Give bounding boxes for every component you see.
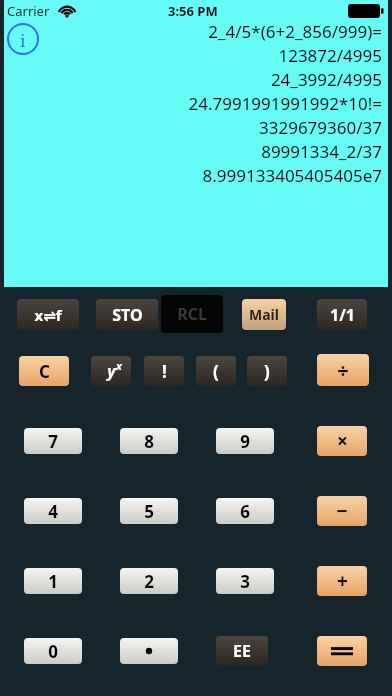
staticText: × [337,428,348,454]
staticText: 9 [240,430,250,453]
staticText: 1/1 [330,304,355,326]
staticText: Mail [249,305,279,324]
staticText: 3:56 PM [168,2,218,20]
button[interactable]: 3 [216,568,274,594]
button[interactable]: 8 [120,428,178,454]
button[interactable]: 2 [120,568,178,594]
button[interactable]: Mail [242,299,286,330]
button[interactable]: 1 [24,568,82,594]
staticText: 3 [240,570,250,593]
staticText: 7 [48,430,58,453]
button[interactable]: 9 [216,428,274,454]
button[interactable]: Info [6,22,40,56]
staticText: C [39,360,50,383]
button[interactable]: ) [247,356,287,386]
staticText: 2 [144,570,154,593]
staticText: 24_3992/4995 [8,68,382,92]
button[interactable]: 6 [216,498,274,524]
button[interactable]: Decimal point [120,638,178,664]
button[interactable]: Equals [317,636,367,666]
button[interactable]: STO [96,299,158,330]
staticText: 89991334_2/37 [8,140,382,164]
staticText: 123872/4995 [8,44,382,68]
button[interactable]: 0 [24,638,82,664]
staticText: 2_4/5*(6+2_856/999)= [8,20,382,44]
staticText: y [107,360,116,382]
staticText: 8 [144,430,154,453]
staticText: Carrier [7,2,50,20]
button[interactable]: ! [144,356,184,386]
staticText: x⇌f [34,305,62,325]
button[interactable]: x⇌f [17,299,79,330]
button[interactable]: EE [216,636,268,665]
button[interactable]: + [317,566,367,596]
staticText: 8.999133405405405e7 [8,164,382,188]
staticText: + [337,568,348,594]
button[interactable]: 5 [120,498,178,524]
staticText: STO [112,304,143,326]
staticText: 4 [48,500,58,523]
staticText: 24.7991991991992*10!= [8,92,382,116]
button[interactable]: − [317,496,367,526]
staticText: ! [162,360,167,383]
staticText: 0 [48,640,58,663]
staticText: EE [233,640,251,662]
button[interactable]: × [317,426,367,456]
staticText: ) [264,360,270,383]
button[interactable]: C [19,356,69,386]
button[interactable]: ÷ [317,354,369,386]
button[interactable]: RCL [161,295,223,333]
staticText: 3329679360/37 [8,116,382,140]
staticText: 6 [240,500,250,523]
staticText: ÷ [337,357,349,384]
staticText: x [116,358,122,373]
staticText: i [20,29,26,52]
button[interactable]: Reciprocal [317,299,367,330]
staticText: 1 [48,570,58,593]
staticText: 5 [144,500,154,523]
button[interactable]: ( [196,356,236,386]
button[interactable]: 7 [24,428,82,454]
button[interactable]: y [91,356,131,386]
button[interactable]: 4 [24,498,82,524]
staticText: RCL [177,303,207,325]
staticText: ( [213,360,219,383]
staticText: − [336,498,348,524]
